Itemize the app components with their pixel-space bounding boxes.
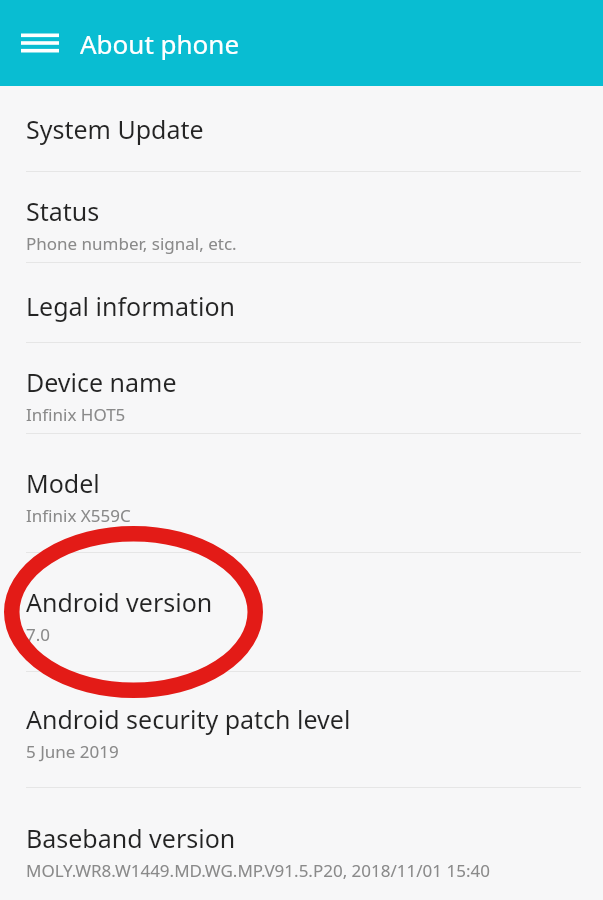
button[interactable]: System Update [0, 86, 603, 171]
staticText: System Update [26, 112, 204, 146]
button[interactable]: Status [0, 172, 603, 262]
button[interactable]: Android security patch level [0, 672, 603, 787]
button[interactable]: Open navigation menu [20, 23, 60, 63]
staticText: Android security patch level [26, 702, 351, 736]
staticText: Legal information [26, 289, 235, 323]
button[interactable]: Device name [0, 343, 603, 433]
staticText: Device name [26, 365, 177, 399]
staticText: 7.0 [26, 623, 51, 646]
staticText: Infinix HOT5 [26, 403, 126, 426]
staticText: 5 June 2019 [26, 740, 119, 763]
button[interactable]: Model [0, 434, 603, 552]
staticText: Phone number, signal, etc. [26, 232, 237, 255]
staticText: Model [26, 466, 100, 500]
staticText: Baseband version [26, 821, 236, 855]
staticText: Infinix X559C [26, 504, 131, 527]
staticText: Status [26, 194, 100, 228]
staticText: About phone [80, 26, 240, 61]
staticText: Android version [26, 585, 213, 619]
staticText: MOLY.WR8.W1449.MD.WG.MP.V91.5.P20, 2018/… [26, 859, 490, 882]
button[interactable]: Android version [0, 553, 603, 671]
button[interactable]: Legal information [0, 263, 603, 342]
button[interactable]: Baseband version [0, 788, 603, 900]
